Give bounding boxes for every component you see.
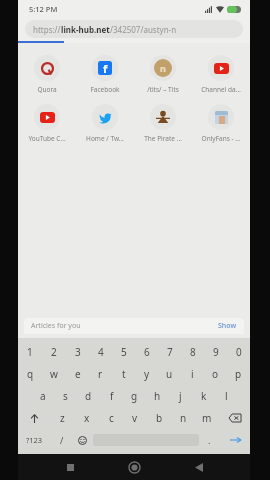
staticText: https:// — [33, 24, 61, 35]
button[interactable]: 2 — [42, 341, 66, 363]
button[interactable]: Shift — [18, 407, 50, 429]
staticText: Show — [218, 321, 237, 331]
staticText: v — [132, 411, 138, 425]
button[interactable]: 5 — [112, 341, 135, 363]
staticText: b — [156, 411, 163, 425]
button[interactable]: p — [227, 363, 250, 385]
button[interactable]: https:// — [25, 20, 243, 38]
staticText: z — [60, 411, 65, 425]
button[interactable]: / — [51, 429, 72, 451]
button[interactable]: e — [66, 363, 89, 385]
staticText: 3 — [75, 345, 81, 359]
button[interactable]: YouTube C… — [18, 101, 76, 146]
staticText: Quora — [18, 85, 76, 94]
staticText: a — [40, 389, 46, 403]
staticText: / — [60, 434, 64, 446]
button[interactable]: o — [204, 363, 227, 385]
staticText: 2 — [51, 345, 57, 359]
staticText: Articles for you — [31, 321, 81, 331]
staticText: m — [202, 411, 212, 425]
staticText: link-hub.net — [61, 24, 110, 35]
button[interactable]: Quora — [18, 52, 76, 97]
staticText: . — [208, 434, 211, 446]
staticText: n — [160, 62, 166, 74]
staticText: g — [131, 389, 138, 403]
button[interactable]: The Pirate … — [134, 101, 192, 146]
button[interactable]: l — [215, 385, 238, 407]
button[interactable]: ?123 — [18, 429, 51, 451]
button[interactable]: s — [54, 385, 77, 407]
staticText: /tits/ – Tits — [134, 85, 192, 94]
button[interactable]: Backspace — [219, 407, 250, 429]
staticText: 0 — [236, 345, 242, 359]
button[interactable]: Articles for you — [24, 318, 244, 334]
button[interactable]: d — [77, 385, 100, 407]
button[interactable]: y — [135, 363, 158, 385]
button[interactable]: 1 — [18, 341, 42, 363]
button[interactable]: j — [169, 385, 192, 407]
button[interactable]: Back — [186, 454, 212, 480]
staticText: /342507/austyn-n — [110, 24, 177, 35]
staticText: d — [85, 389, 92, 403]
staticText: q — [27, 367, 34, 381]
button[interactable]: h — [146, 385, 169, 407]
button[interactable]: Emoji — [72, 429, 93, 451]
staticText: j — [179, 389, 182, 403]
button[interactable]: g — [123, 385, 146, 407]
staticText: 9 — [213, 345, 219, 359]
button[interactable]: k — [192, 385, 215, 407]
button[interactable]: 6 — [135, 341, 158, 363]
button[interactable]: x — [75, 407, 99, 429]
staticText: 6 — [144, 345, 150, 359]
button[interactable]: Channel da… — [192, 52, 250, 97]
button[interactable]: OnlyFans - … — [192, 101, 250, 146]
button[interactable]: n — [134, 52, 192, 97]
staticText: n — [180, 411, 187, 425]
button[interactable]: q — [18, 363, 42, 385]
button[interactable]: 7 — [158, 341, 181, 363]
button[interactable]: w — [42, 363, 66, 385]
staticText: 7 — [167, 345, 173, 359]
staticText: i — [191, 367, 194, 381]
staticText: c — [109, 411, 114, 425]
button[interactable]: r — [89, 363, 112, 385]
button[interactable]: i — [181, 363, 204, 385]
staticText: s — [63, 389, 68, 403]
button[interactable]: u — [158, 363, 181, 385]
button[interactable]: t — [112, 363, 135, 385]
button[interactable]: f — [76, 52, 134, 97]
button[interactable]: b — [147, 407, 171, 429]
staticText: f — [103, 61, 108, 74]
button[interactable]: 3 — [66, 341, 89, 363]
button[interactable]: Home — [121, 454, 147, 480]
staticText: u — [166, 367, 173, 381]
staticText: 4 — [98, 345, 104, 359]
button[interactable]: 9 — [204, 341, 227, 363]
button[interactable]: Home / Tw… — [76, 101, 134, 146]
button[interactable]: m — [195, 407, 219, 429]
button[interactable]: z — [50, 407, 75, 429]
button[interactable]: Go — [220, 429, 250, 451]
button[interactable]: 4 — [89, 341, 112, 363]
staticText: 5:12 PM — [29, 4, 58, 14]
staticText: p — [235, 367, 242, 381]
button[interactable]: 0 — [227, 341, 250, 363]
staticText: r — [98, 367, 103, 381]
button[interactable]: f — [100, 385, 123, 407]
button[interactable]: . — [199, 429, 220, 451]
staticText: The Pirate … — [134, 134, 192, 143]
button[interactable]: n — [171, 407, 195, 429]
button[interactable]: a — [31, 385, 54, 407]
button[interactable]: Recents — [57, 454, 83, 480]
staticText: Home / Tw… — [76, 134, 134, 143]
staticText: Facebook — [76, 85, 134, 94]
staticText: x — [84, 411, 90, 425]
staticText: o — [212, 367, 219, 381]
staticText: w — [50, 367, 58, 381]
staticText: t — [122, 367, 126, 381]
button[interactable]: 8 — [181, 341, 204, 363]
button[interactable]: c — [99, 407, 123, 429]
button[interactable]: v — [123, 407, 147, 429]
staticText: e — [75, 367, 81, 381]
